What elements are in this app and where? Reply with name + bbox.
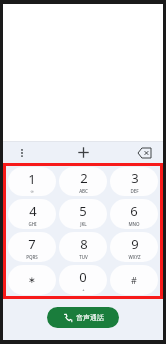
staticText: ∞ [30, 189, 34, 194]
staticText: 2 [80, 169, 88, 187]
staticText: TUV [79, 254, 88, 260]
staticText: 6 [130, 202, 138, 220]
staticText: 3 [131, 169, 139, 187]
button[interactable]: Add [41, 142, 125, 163]
button[interactable]: 7 [8, 232, 56, 262]
button[interactable]: 6 [110, 199, 158, 229]
button[interactable]: 8 [59, 232, 107, 262]
staticText: MNO [128, 221, 140, 227]
staticText: 音声通話 [76, 313, 104, 322]
button[interactable]: ∗ [8, 265, 56, 295]
button[interactable]: 0 [59, 265, 107, 295]
staticText: 0 [79, 268, 87, 286]
staticText: GHI [28, 221, 37, 227]
staticText: 4 [29, 202, 37, 220]
staticText: ∗ [28, 275, 36, 285]
staticText: WXYZ [128, 254, 141, 260]
staticText: 7 [28, 235, 36, 253]
staticText: DEF [130, 188, 139, 194]
staticText: 9 [131, 235, 139, 253]
staticText: 5 [79, 202, 87, 220]
staticText: PQRS [26, 254, 38, 260]
button[interactable]: More options [3, 142, 41, 163]
button[interactable]: 2 [59, 167, 107, 196]
button[interactable]: 音声通話 [47, 307, 119, 328]
staticText: JKL [80, 221, 87, 227]
staticText: ABC [79, 188, 88, 194]
staticText: # [131, 274, 137, 286]
staticText: + [82, 287, 85, 292]
button[interactable]: 1 [8, 167, 56, 196]
button[interactable]: 5 [59, 199, 107, 229]
button[interactable]: 9 [110, 232, 158, 262]
button[interactable]: # [110, 265, 158, 295]
button[interactable]: Backspace [125, 142, 163, 163]
button[interactable]: 3 [110, 167, 158, 196]
button[interactable]: 4 [8, 199, 56, 229]
staticText: 1 [28, 170, 36, 188]
staticText: 8 [80, 235, 88, 253]
